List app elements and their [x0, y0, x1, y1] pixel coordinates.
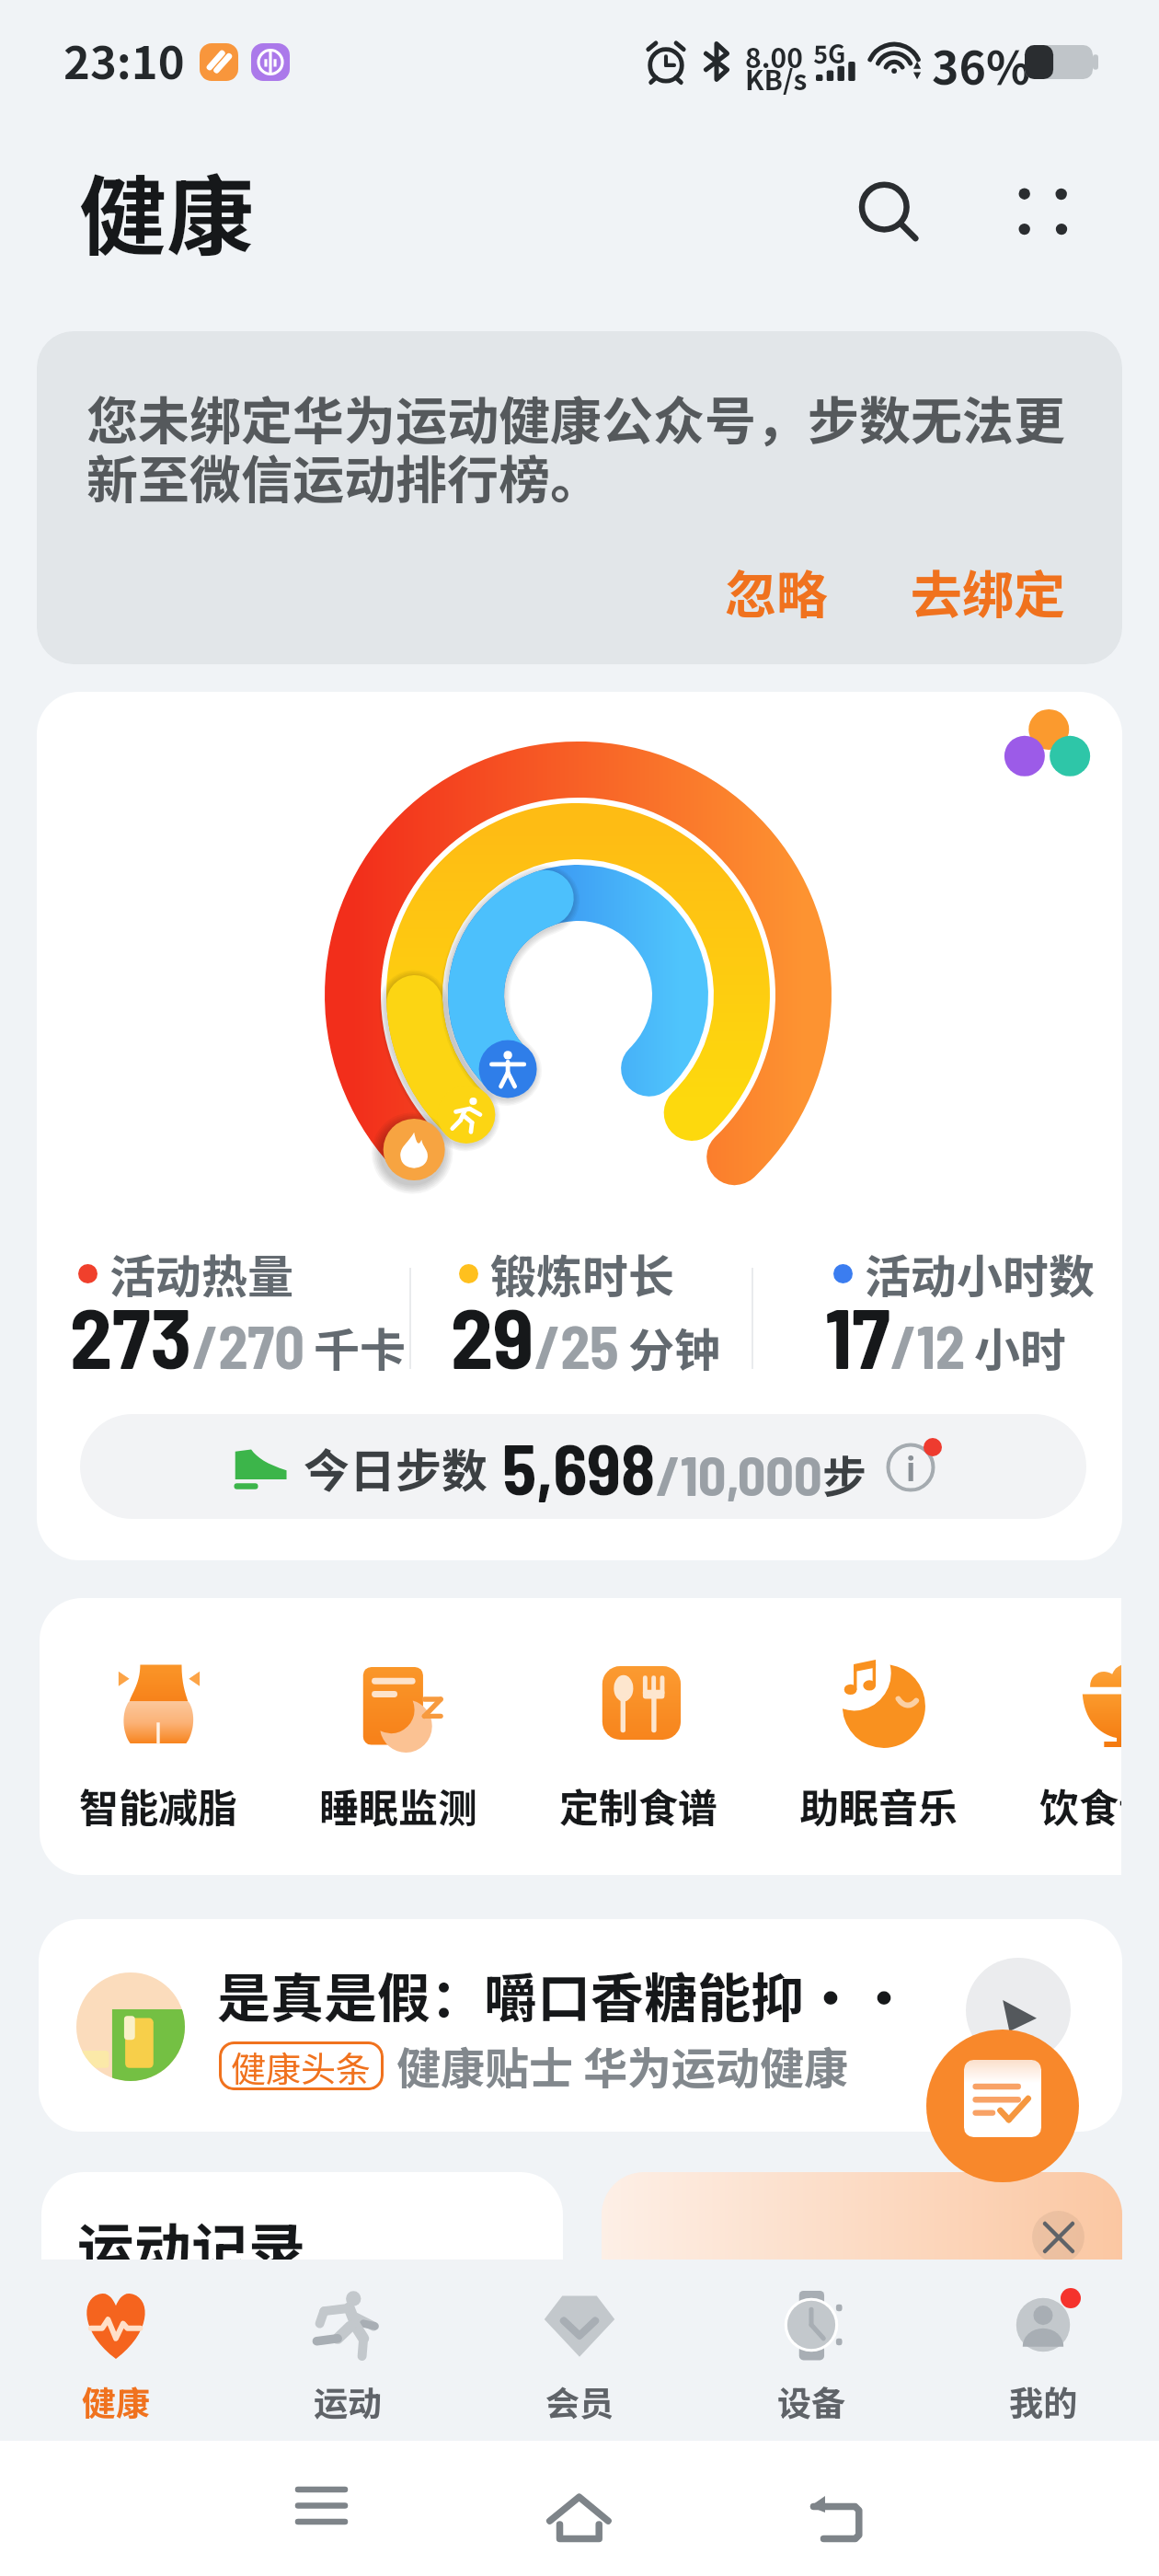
button[interactable]: Home	[534, 2455, 625, 2547]
button[interactable]: Search	[829, 152, 939, 262]
button[interactable]: 是真是假：嚼口香糖能抑··	[39, 1919, 1122, 2132]
staticText: 23:10	[63, 27, 185, 92]
staticText: 29	[451, 1284, 534, 1386]
staticText: 步	[822, 1442, 867, 1506]
button[interactable]: Health data	[966, 692, 1122, 793]
staticText: 今日步数	[304, 1434, 488, 1501]
button[interactable]: More options	[988, 156, 1098, 267]
button[interactable]: Recents	[276, 2455, 368, 2547]
staticText: 去绑定	[911, 554, 1065, 628]
staticText: 千卡	[314, 1314, 406, 1380]
staticText: 运动	[314, 2376, 382, 2426]
staticText: 分钟	[628, 1314, 720, 1380]
staticText: 睡眠监测	[319, 1777, 477, 1834]
staticText: 健康	[79, 147, 255, 274]
staticText: 36%	[932, 31, 1031, 98]
staticText: 您未绑定华为运动健康公众号，步数无法更新至微信运动排行榜。	[86, 380, 1075, 513]
staticText: 运动记录	[77, 2204, 306, 2260]
staticText: 8.00	[745, 36, 803, 75]
staticText: 设备	[777, 2376, 845, 2426]
staticText: 活动热量	[109, 1240, 293, 1306]
staticText: /25	[534, 1310, 619, 1381]
staticText: /12	[890, 1310, 965, 1381]
staticText: 小时	[974, 1314, 1066, 1380]
staticText: 5,698	[502, 1425, 656, 1509]
staticText: 定制食谱	[559, 1777, 717, 1834]
button[interactable]: 智能减脂	[40, 1598, 278, 1875]
staticText: 活动小时数	[865, 1240, 1095, 1306]
button[interactable]: 去绑定	[896, 545, 1080, 638]
staticText: 锻炼时长	[490, 1240, 674, 1306]
staticText: i	[906, 1445, 916, 1490]
button[interactable]: 运动	[232, 2260, 464, 2441]
button[interactable]: 助眠音乐	[759, 1598, 998, 1875]
button[interactable]: 运动记录	[41, 2172, 563, 2260]
staticText: 我的	[1009, 2376, 1077, 2426]
staticText: KB/s	[745, 58, 808, 98]
staticText: 健康贴士 华为运动健康	[396, 2033, 848, 2098]
staticText: 5G	[813, 35, 846, 71]
button[interactable]: 睡眠监测	[279, 1598, 518, 1875]
button[interactable]: 忽略	[710, 545, 843, 638]
button[interactable]: 设备	[695, 2260, 927, 2441]
button[interactable]: Close	[1032, 2211, 1084, 2260]
staticText: 助眠音乐	[799, 1777, 958, 1834]
staticText: /10,000	[656, 1441, 822, 1507]
staticText: 饮食记录	[1039, 1777, 1121, 1834]
button[interactable]: 定制食谱	[519, 1598, 758, 1875]
button[interactable]: 会员	[464, 2260, 695, 2441]
staticText: /270	[192, 1310, 304, 1381]
staticText: 忽略	[725, 554, 828, 628]
button[interactable]: Back	[791, 2455, 883, 2547]
staticText: 是真是假：嚼口香糖能抑··	[217, 1956, 912, 2033]
staticText: 会员	[545, 2376, 614, 2426]
button[interactable]: 今日步数	[80, 1414, 1086, 1519]
button[interactable]: Add health record	[926, 2030, 1079, 2182]
staticText: 智能减脂	[79, 1777, 237, 1834]
staticText: 健康头条	[231, 2041, 372, 2090]
button[interactable]: 我的	[927, 2260, 1159, 2441]
button[interactable]: 健康	[0, 2260, 232, 2441]
button[interactable]: Play	[966, 1958, 1071, 2063]
staticText: 健康	[82, 2376, 150, 2426]
button[interactable]: 饮食记录	[999, 1598, 1121, 1875]
staticText: 273	[70, 1284, 192, 1386]
staticText: 17	[825, 1284, 890, 1386]
